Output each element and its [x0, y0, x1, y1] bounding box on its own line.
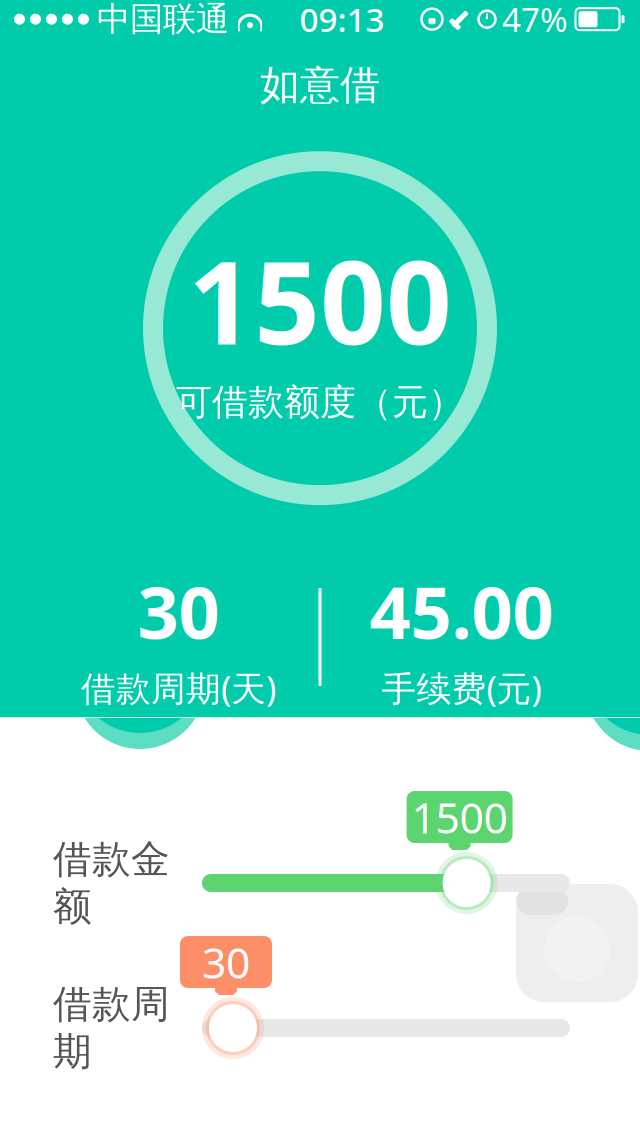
staticText: 30 — [202, 934, 250, 990]
staticText: 09:13 — [299, 0, 384, 41]
staticText: 手续费(元) — [381, 665, 541, 711]
staticText: 借款金额 — [53, 835, 170, 930]
staticText: 1500 — [188, 224, 452, 376]
staticText: 1500 — [412, 789, 508, 845]
staticText: 中国联通 — [97, 0, 229, 40]
staticText: 可借款额度（元） — [176, 380, 464, 424]
button[interactable]: 30 — [0, 936, 640, 1057]
staticText: 47% — [502, 0, 568, 41]
staticText: 如意借 — [260, 61, 380, 110]
staticText: 30 — [137, 563, 219, 659]
staticText: 借款周期 — [53, 980, 170, 1075]
staticText: 45.00 — [369, 563, 553, 659]
staticText: 借款周期(天) — [81, 665, 276, 711]
button[interactable]: 1500 — [0, 791, 640, 912]
